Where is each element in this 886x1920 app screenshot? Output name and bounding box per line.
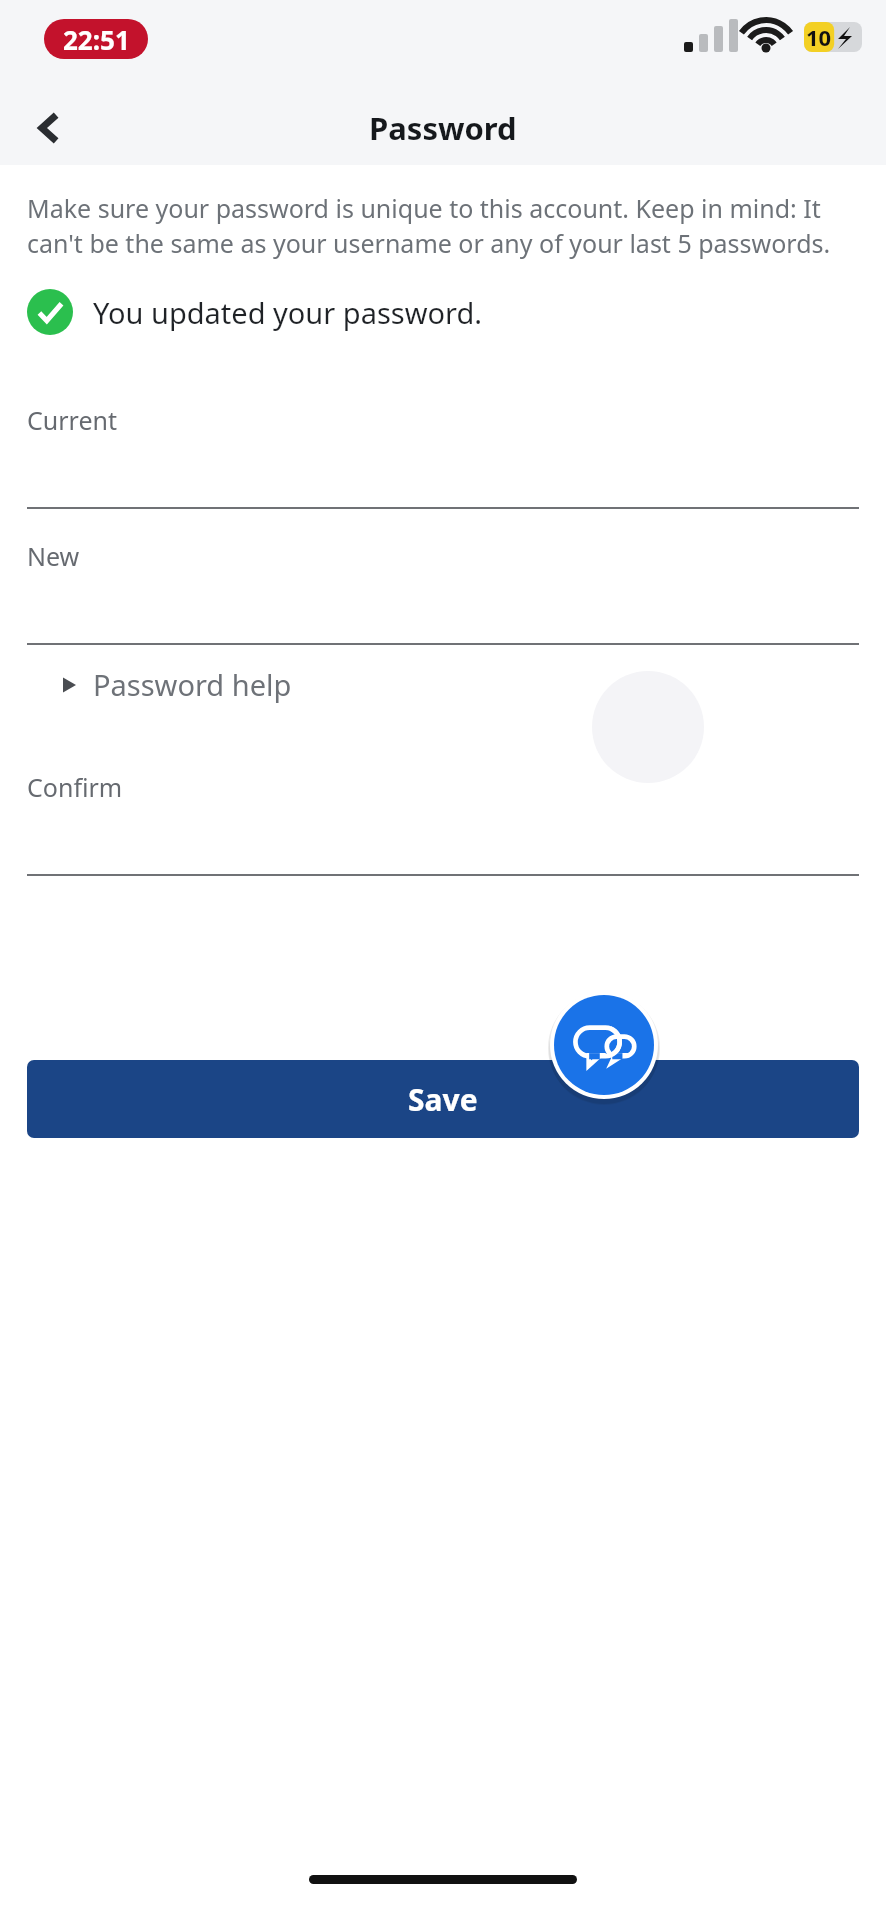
- staticText: New: [27, 539, 80, 573]
- button[interactable]: New: [27, 539, 859, 645]
- staticText: You updated your password.: [93, 293, 483, 332]
- button[interactable]: Chat support: [548, 989, 660, 1101]
- staticText: Password: [369, 107, 517, 149]
- button[interactable]: Confirm: [27, 770, 859, 876]
- button[interactable]: Current: [27, 403, 859, 509]
- button[interactable]: Save: [27, 1060, 859, 1138]
- staticText: Make sure your password is unique to thi…: [27, 191, 859, 261]
- staticText: Save: [408, 1079, 478, 1120]
- staticText: 10: [806, 22, 832, 52]
- staticText: Current: [27, 403, 117, 437]
- button[interactable]: Back: [18, 96, 82, 160]
- staticText: 22:51: [63, 22, 130, 57]
- staticText: Password help: [93, 665, 292, 704]
- staticText: Confirm: [27, 770, 123, 804]
- button[interactable]: Password help: [55, 657, 296, 712]
